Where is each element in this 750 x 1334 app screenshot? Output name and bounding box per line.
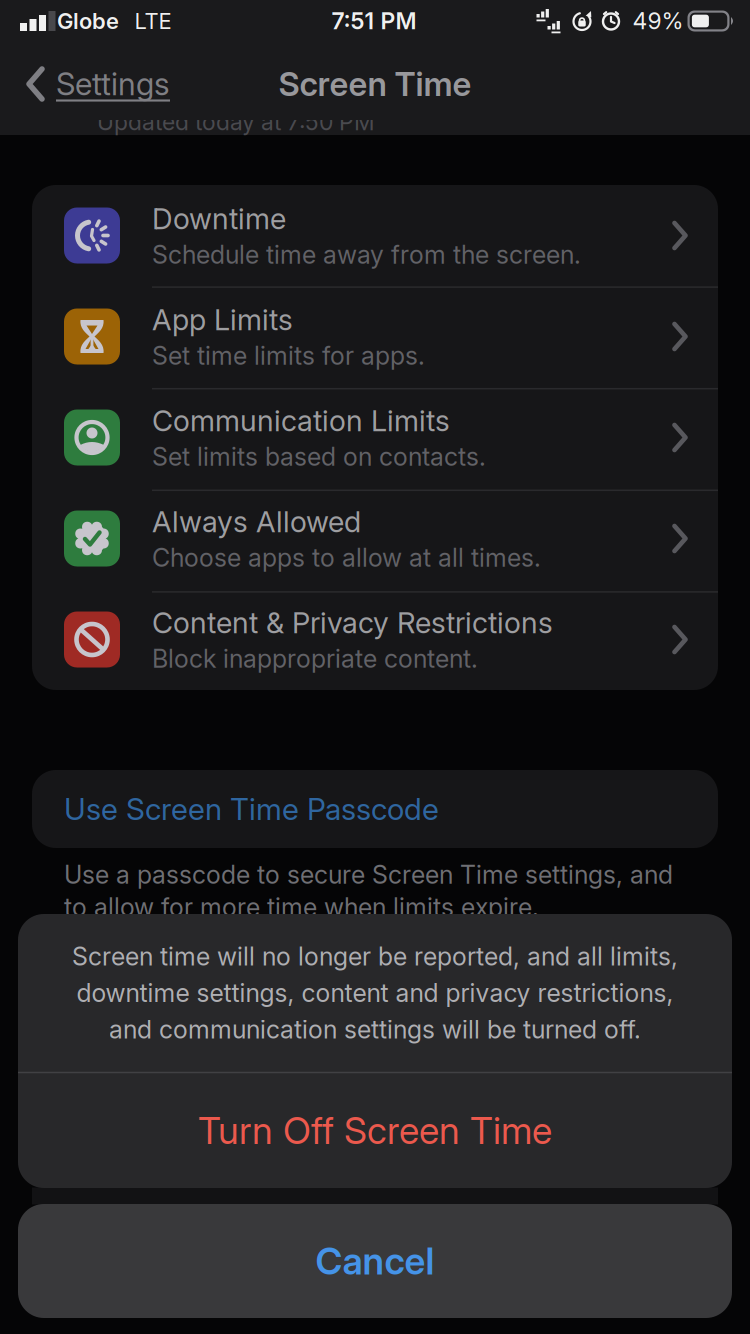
staticText: Globe bbox=[57, 8, 119, 34]
staticText: to allow for more time when limits expir… bbox=[64, 892, 539, 922]
staticText: 49% bbox=[632, 7, 683, 34]
staticText: Choose apps to allow at all times. bbox=[152, 543, 541, 572]
button[interactable]: Back bbox=[26, 66, 170, 102]
staticText: Downtime bbox=[152, 202, 286, 236]
staticText: Use a passcode to secure Screen Time set… bbox=[64, 860, 673, 889]
staticText: Schedule time away from the screen. bbox=[152, 240, 581, 269]
staticText: and communication settings will be turne… bbox=[109, 1015, 641, 1044]
button[interactable]: App Limits bbox=[32, 286, 718, 387]
button[interactable]: Downtime bbox=[32, 185, 718, 286]
button[interactable]: Turn Off Screen Time bbox=[18, 1073, 732, 1187]
staticText: Updated today at 7:50 PM bbox=[97, 108, 375, 135]
staticText: Settings bbox=[56, 66, 170, 102]
button[interactable]: Content & Privacy Restrictions bbox=[32, 589, 718, 690]
staticText: Communication Limits bbox=[152, 404, 450, 438]
button[interactable]: Cancel bbox=[18, 1204, 732, 1318]
staticText: Use Screen Time Passcode bbox=[64, 791, 439, 827]
staticText: Screen Time bbox=[278, 64, 471, 103]
staticText: Set limits based on contacts. bbox=[152, 442, 486, 471]
staticText: downtime settings, content and privacy r… bbox=[76, 978, 673, 1008]
staticText: LTE bbox=[134, 8, 171, 34]
staticText: Set time limits for apps. bbox=[152, 341, 425, 370]
staticText: Screen time will no longer be reported, … bbox=[72, 942, 678, 971]
staticText: App Limits bbox=[152, 303, 293, 337]
staticText: Block inappropriate content. bbox=[152, 644, 478, 673]
button[interactable]: Use Screen Time Passcode bbox=[32, 770, 718, 848]
staticText: 7:51 PM bbox=[331, 7, 416, 34]
staticText: Cancel bbox=[315, 1239, 434, 1283]
button[interactable]: Communication Limits bbox=[32, 387, 718, 488]
staticText: Always Allowed bbox=[152, 505, 361, 539]
button[interactable]: Always Allowed bbox=[32, 488, 718, 589]
staticText: Turn Off Screen Time bbox=[198, 1109, 552, 1152]
staticText: Content & Privacy Restrictions bbox=[152, 606, 553, 640]
